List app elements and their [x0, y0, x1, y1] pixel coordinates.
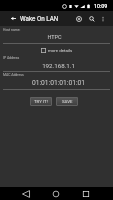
staticText: Wake On LAN [20, 15, 59, 22]
button[interactable]: TRY IT! [30, 97, 52, 106]
button[interactable]: Back [19, 187, 32, 200]
staticText: 192.168.1.1 [5, 62, 112, 69]
staticText: SAVE [62, 99, 73, 104]
button[interactable]: Search [85, 12, 98, 25]
button[interactable]: Home [49, 187, 62, 200]
button[interactable]: 01:01:01:01:01:01 [3, 79, 110, 87]
button[interactable]: Navigate up [0, 11, 20, 26]
button[interactable]: HTPC [3, 34, 110, 40]
staticText: MAC Address [3, 73, 24, 77]
button[interactable]: Add [72, 12, 85, 25]
button[interactable]: more details [41, 48, 73, 53]
staticText: IP Address [3, 56, 20, 60]
staticText: more details [48, 48, 73, 53]
button[interactable]: SAVE [56, 97, 78, 106]
button[interactable]: 192.168.1.1 [3, 62, 110, 69]
staticText: 01:01:01:01:01:01 [5, 79, 112, 87]
button[interactable]: Recent apps [79, 187, 92, 200]
staticText: 10:09 [94, 3, 108, 9]
staticText: TRY IT! [34, 99, 48, 104]
staticText: HTPC [1, 34, 108, 40]
staticText: Host name: [3, 28, 21, 32]
button[interactable]: More options [98, 12, 107, 25]
